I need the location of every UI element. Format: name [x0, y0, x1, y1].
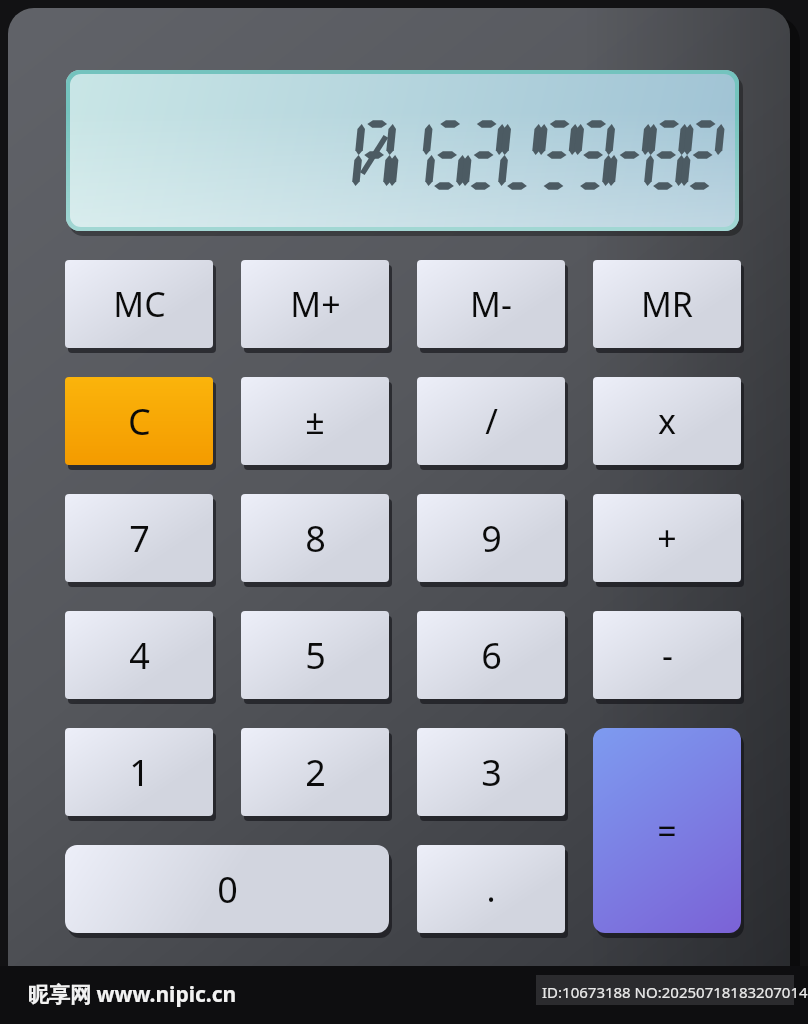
button[interactable]: . [417, 845, 565, 933]
staticText: 7 [129, 514, 150, 563]
button[interactable]: 7 [65, 494, 213, 582]
staticText: / [485, 398, 498, 444]
button[interactable]: 0 [65, 845, 389, 933]
button[interactable]: 3 [417, 728, 565, 816]
button[interactable]: x [593, 377, 741, 465]
button[interactable]: C [65, 377, 213, 465]
button[interactable]: 1 [65, 728, 213, 816]
staticText: + [657, 515, 677, 561]
staticText: C [128, 397, 151, 446]
button[interactable]: 8 [241, 494, 389, 582]
button[interactable]: 9 [417, 494, 565, 582]
staticText: ± [305, 398, 325, 444]
button[interactable]: + [593, 494, 741, 582]
staticText: M- [470, 281, 512, 327]
staticText: M+ [290, 281, 341, 327]
button[interactable]: - [593, 611, 741, 699]
button[interactable]: ± [241, 377, 389, 465]
staticText: MR [641, 281, 693, 327]
staticText: 1 [129, 748, 150, 797]
staticText: 4 [129, 631, 150, 680]
staticText: 5 [305, 631, 326, 680]
button[interactable]: M+ [241, 260, 389, 348]
button[interactable]: 4 [65, 611, 213, 699]
button[interactable]: 5 [241, 611, 389, 699]
button[interactable]: 6 [417, 611, 565, 699]
staticText: = [657, 808, 677, 854]
staticText: - [662, 632, 673, 678]
button[interactable]: / [417, 377, 565, 465]
staticText: MC [113, 281, 166, 327]
other: nipic watermark [28, 980, 237, 1009]
button[interactable]: MC [65, 260, 213, 348]
button[interactable]: MR [593, 260, 741, 348]
button[interactable]: = [593, 728, 741, 933]
staticText: x [658, 398, 676, 444]
staticText: 9 [481, 514, 502, 563]
staticText: 0 [217, 865, 238, 914]
staticText: 8 [305, 514, 326, 563]
staticText: 昵享网 www.nipic.cn [28, 980, 237, 1009]
button[interactable]: 2 [241, 728, 389, 816]
staticText: 2 [305, 748, 326, 797]
button[interactable]: M- [417, 260, 565, 348]
staticText: . [486, 866, 496, 912]
staticText: 3 [481, 748, 502, 797]
staticText: ID:10673188 NO:20250718183207014105 [542, 982, 808, 1002]
staticText: 6 [481, 631, 502, 680]
